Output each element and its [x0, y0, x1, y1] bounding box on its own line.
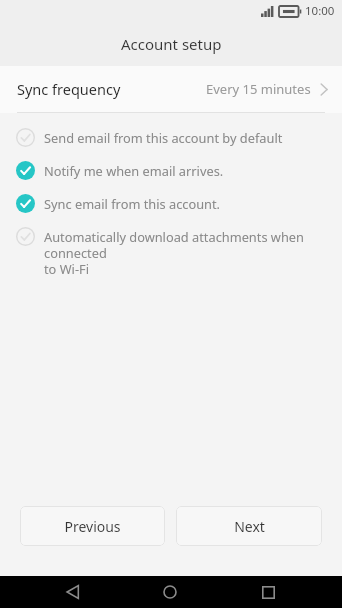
staticText: Sync frequency — [17, 79, 121, 99]
button[interactable]: Automatically download attachments when … — [0, 221, 342, 284]
button[interactable]: Back — [49, 576, 97, 608]
staticText: Automatically download attachments when … — [44, 228, 328, 277]
button[interactable]: Sync frequency — [0, 66, 342, 112]
button[interactable]: Sync email from this account. — [0, 188, 342, 221]
button[interactable]: Send email from this account by default — [0, 122, 342, 155]
staticText: Notify me when email arrives. — [44, 162, 224, 179]
staticText: Next — [234, 517, 265, 536]
button[interactable]: Recent apps — [244, 576, 292, 608]
staticText: 10:00 — [305, 3, 335, 19]
staticText: Previous — [64, 517, 121, 536]
staticText: Account setup — [121, 34, 222, 54]
button[interactable]: Home — [146, 576, 194, 608]
staticText: Sync email from this account. — [44, 195, 221, 212]
staticText: Every 15 minutes — [206, 80, 311, 98]
button[interactable]: Notify me when email arrives. — [0, 155, 342, 188]
staticText: Send email from this account by default — [44, 129, 283, 146]
button[interactable]: Previous — [20, 506, 165, 546]
button[interactable]: Next — [176, 506, 322, 546]
